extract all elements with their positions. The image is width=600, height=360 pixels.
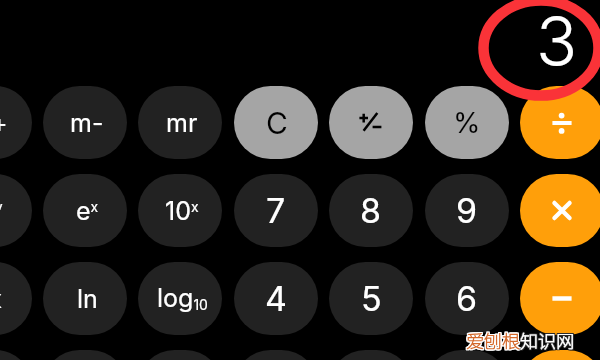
staticText: mr xyxy=(166,108,198,138)
staticText: y√x xyxy=(0,284,3,314)
button[interactable]: 9 xyxy=(425,174,509,247)
button[interactable]: x to the power of y xyxy=(0,174,32,247)
staticText: 6 xyxy=(456,278,478,319)
staticText: 爱刨根知识网 xyxy=(467,326,575,352)
staticText: C xyxy=(266,105,288,141)
staticText: 爱刨根知识网 xyxy=(466,326,574,352)
button[interactable]: 4 xyxy=(234,262,318,335)
button[interactable]: Memory add xyxy=(0,86,32,159)
button[interactable]: Toggle sign xyxy=(329,86,413,159)
staticText: m- xyxy=(70,108,104,138)
staticText: 5 xyxy=(361,278,382,319)
staticText: 9 xyxy=(456,190,478,231)
staticText: 爱刨根知识网 xyxy=(465,327,573,353)
button[interactable]: Log base 10 xyxy=(138,262,222,335)
staticText: 8 xyxy=(360,190,382,231)
button[interactable]: 2 xyxy=(329,350,413,360)
button[interactable]: Radians xyxy=(138,350,222,360)
staticText: 爱刨根知识网 xyxy=(467,327,575,353)
button[interactable]: 10 to the power of x xyxy=(138,174,222,247)
staticText: xy xyxy=(0,196,3,226)
staticText: 爱刨根知识网 xyxy=(466,327,574,353)
button[interactable]: 1 xyxy=(234,350,318,360)
staticText: 10x xyxy=(165,196,199,226)
button[interactable]: Natural logarithm xyxy=(43,262,127,335)
button[interactable]: Clear xyxy=(234,86,318,159)
staticText: 爱刨根知识网 xyxy=(465,326,573,352)
button[interactable]: 7 xyxy=(234,174,318,247)
staticText: ex xyxy=(76,196,99,226)
button[interactable]: y-th root of x xyxy=(0,262,32,335)
button[interactable]: 3 xyxy=(425,350,509,360)
staticText: m+ xyxy=(0,108,8,138)
button[interactable]: Exponent xyxy=(43,350,127,360)
button[interactable]: e to the power of x xyxy=(43,174,127,247)
button[interactable]: 5 xyxy=(329,262,413,335)
staticText: 爱刨根知识网 xyxy=(467,328,575,354)
button[interactable]: Subtract xyxy=(520,262,600,335)
button[interactable]: Multiply xyxy=(520,174,600,247)
staticText: log10 xyxy=(157,283,208,314)
button[interactable]: 6 xyxy=(425,262,509,335)
staticText: 爱刨根知识网 xyxy=(466,328,574,354)
button[interactable]: 8 xyxy=(329,174,413,247)
staticText: 4 xyxy=(265,278,287,319)
button[interactable]: e xyxy=(0,350,32,360)
button[interactable]: Divide xyxy=(520,86,600,159)
button[interactable]: Add xyxy=(520,350,600,360)
button[interactable]: Memory subtract xyxy=(43,86,127,159)
button[interactable]: Percent xyxy=(425,86,509,159)
staticText: 7 xyxy=(266,190,286,231)
staticText: % xyxy=(453,106,481,140)
staticText: 爱刨根知识网 xyxy=(465,328,573,354)
staticText: 3 xyxy=(536,0,578,82)
button[interactable]: Memory recall xyxy=(138,86,222,159)
staticText: ln xyxy=(77,284,98,314)
